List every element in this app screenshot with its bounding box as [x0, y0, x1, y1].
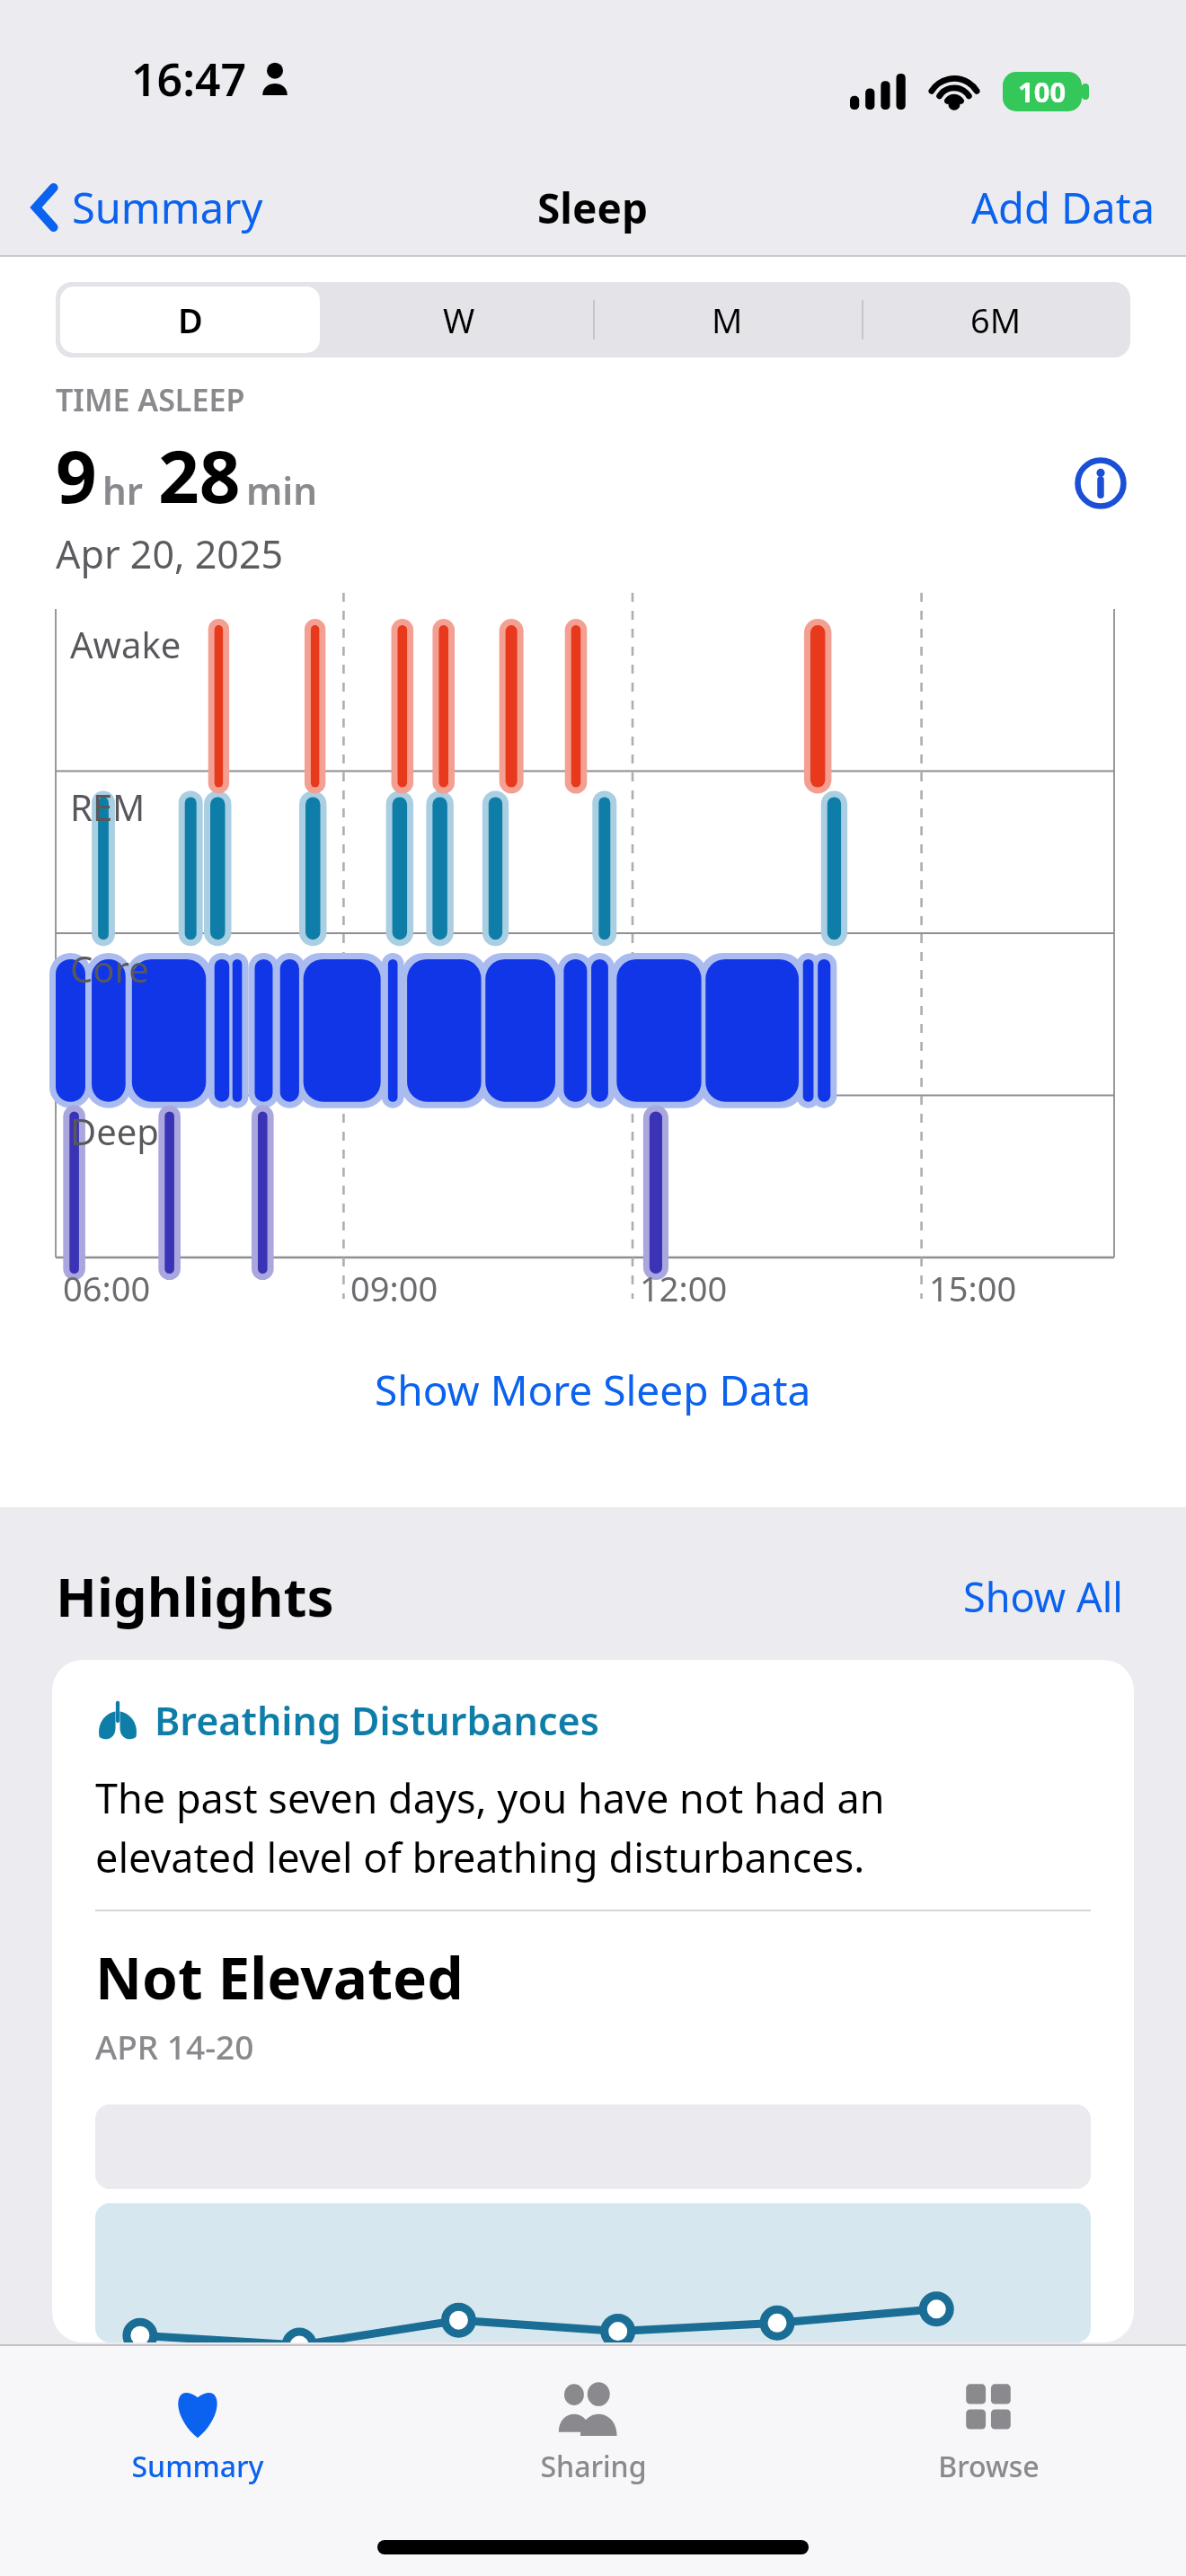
button[interactable]: Show All	[956, 1562, 1130, 1631]
staticText: The past seven days, you have not had an…	[95, 1770, 885, 1884]
staticText: Apr 20, 2025	[56, 527, 284, 580]
staticText: 100	[1018, 73, 1067, 110]
staticText: 6M	[970, 296, 1022, 343]
button[interactable]: Sharing	[395, 2369, 791, 2492]
staticText: Show More Sleep Data	[375, 1362, 811, 1418]
staticText: hr	[102, 464, 144, 516]
staticText: 09:00	[350, 1265, 438, 1311]
staticText: 16:47	[131, 49, 247, 110]
staticText: 06:00	[63, 1265, 151, 1311]
staticText: 28	[158, 426, 241, 524]
staticText: Summary	[131, 2447, 264, 2486]
button[interactable]: D	[56, 282, 324, 357]
button[interactable]: W	[324, 282, 593, 357]
staticText: REM	[70, 782, 146, 831]
staticText: Awake	[70, 620, 181, 668]
button[interactable]: Summary	[25, 170, 270, 245]
staticText: Not Elevated	[95, 1938, 464, 2016]
staticText: Highlights	[56, 1559, 334, 1633]
button[interactable]: Summary	[0, 2369, 395, 2492]
button[interactable]: Browse	[791, 2369, 1186, 2492]
staticText: Show All	[963, 1569, 1123, 1624]
staticText: Sharing	[540, 2447, 647, 2486]
button[interactable]: Add Data	[941, 168, 1186, 247]
staticText: D	[178, 296, 203, 343]
staticText: 9	[56, 426, 97, 524]
button[interactable]: M	[593, 282, 862, 357]
staticText: Sleep	[537, 180, 649, 236]
button[interactable]: Show More Sleep Data	[353, 1353, 833, 1427]
staticText: Deep	[70, 1107, 159, 1155]
staticText: APR 14-20	[95, 2024, 254, 2069]
staticText: Breathing Disturbances	[155, 1694, 599, 1747]
button[interactable]: Information	[1071, 454, 1130, 513]
button[interactable]: Breathing Disturbances	[52, 1660, 1134, 2342]
staticText: Summary	[72, 179, 263, 236]
staticText: 12:00	[640, 1265, 728, 1311]
staticText: 15:00	[929, 1265, 1017, 1311]
staticText: TIME ASLEEP	[56, 379, 245, 420]
staticText: M	[712, 296, 743, 343]
staticText: min	[246, 464, 318, 516]
staticText: W	[443, 296, 475, 343]
button[interactable]: 6M	[862, 282, 1130, 357]
staticText: Browse	[938, 2447, 1040, 2486]
staticText: Core	[70, 944, 149, 992]
